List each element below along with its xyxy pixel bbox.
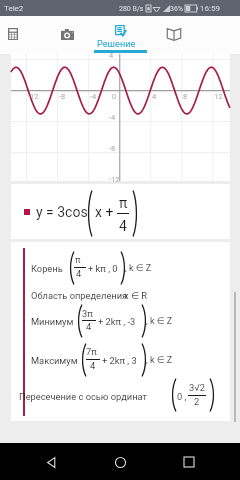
button[interactable]: Back	[33, 444, 69, 480]
staticText: y = 3cos	[36, 204, 88, 220]
staticText: 4	[119, 218, 127, 234]
staticText: Минимум	[31, 316, 74, 327]
staticText: Максимум	[31, 355, 78, 366]
staticText: 4	[86, 321, 92, 332]
staticText: -4	[90, 92, 97, 101]
staticText: Корень	[31, 263, 63, 274]
button[interactable]: Calculator	[0, 16, 40, 54]
button[interactable]	[94, 16, 147, 54]
staticText: 12	[214, 92, 223, 101]
staticText: -8	[59, 92, 66, 101]
staticText: Tele2	[4, 4, 24, 13]
staticText: 7π	[86, 346, 97, 357]
staticText: , k ∈ Z	[146, 316, 173, 327]
staticText: -12	[109, 175, 120, 184]
staticText: 3π	[82, 308, 93, 319]
staticText: -12	[28, 92, 39, 101]
staticText: -4	[109, 113, 116, 122]
staticText: 8	[183, 92, 188, 101]
staticText: , k ∈ Z	[146, 355, 173, 366]
staticText: 3√2	[189, 382, 205, 393]
button[interactable]: Dictionary	[147, 16, 201, 54]
staticText: 4	[76, 268, 82, 279]
staticText: + 2kπ , -3	[98, 316, 136, 327]
staticText: Область определения	[31, 290, 128, 301]
staticText: + kπ , 0	[88, 263, 118, 274]
staticText: 280 B/s	[119, 5, 144, 13]
staticText: 0	[112, 92, 117, 101]
staticText: π	[75, 254, 81, 265]
staticText: 4	[90, 360, 96, 371]
staticText: x +	[95, 204, 114, 220]
staticText: π	[119, 195, 128, 211]
button[interactable]: Camera	[40, 16, 94, 54]
staticText: 4	[109, 51, 114, 60]
staticText: 0 ,	[177, 391, 187, 402]
staticText: Пересечение с осью ординат	[19, 391, 147, 402]
button[interactable]: Home	[102, 444, 138, 480]
staticText: 2	[194, 396, 200, 407]
staticText: -8	[109, 144, 116, 153]
staticText: 16:59	[200, 4, 220, 13]
button[interactable]: Recents	[171, 444, 207, 480]
staticText: Решение	[97, 38, 136, 49]
staticText: , k ∈ Z	[125, 263, 152, 274]
staticText: 36%	[170, 5, 183, 13]
staticText: + 2kπ , 3	[102, 355, 137, 366]
staticText: x ∈ R	[124, 290, 148, 301]
staticText: 4	[152, 92, 157, 101]
